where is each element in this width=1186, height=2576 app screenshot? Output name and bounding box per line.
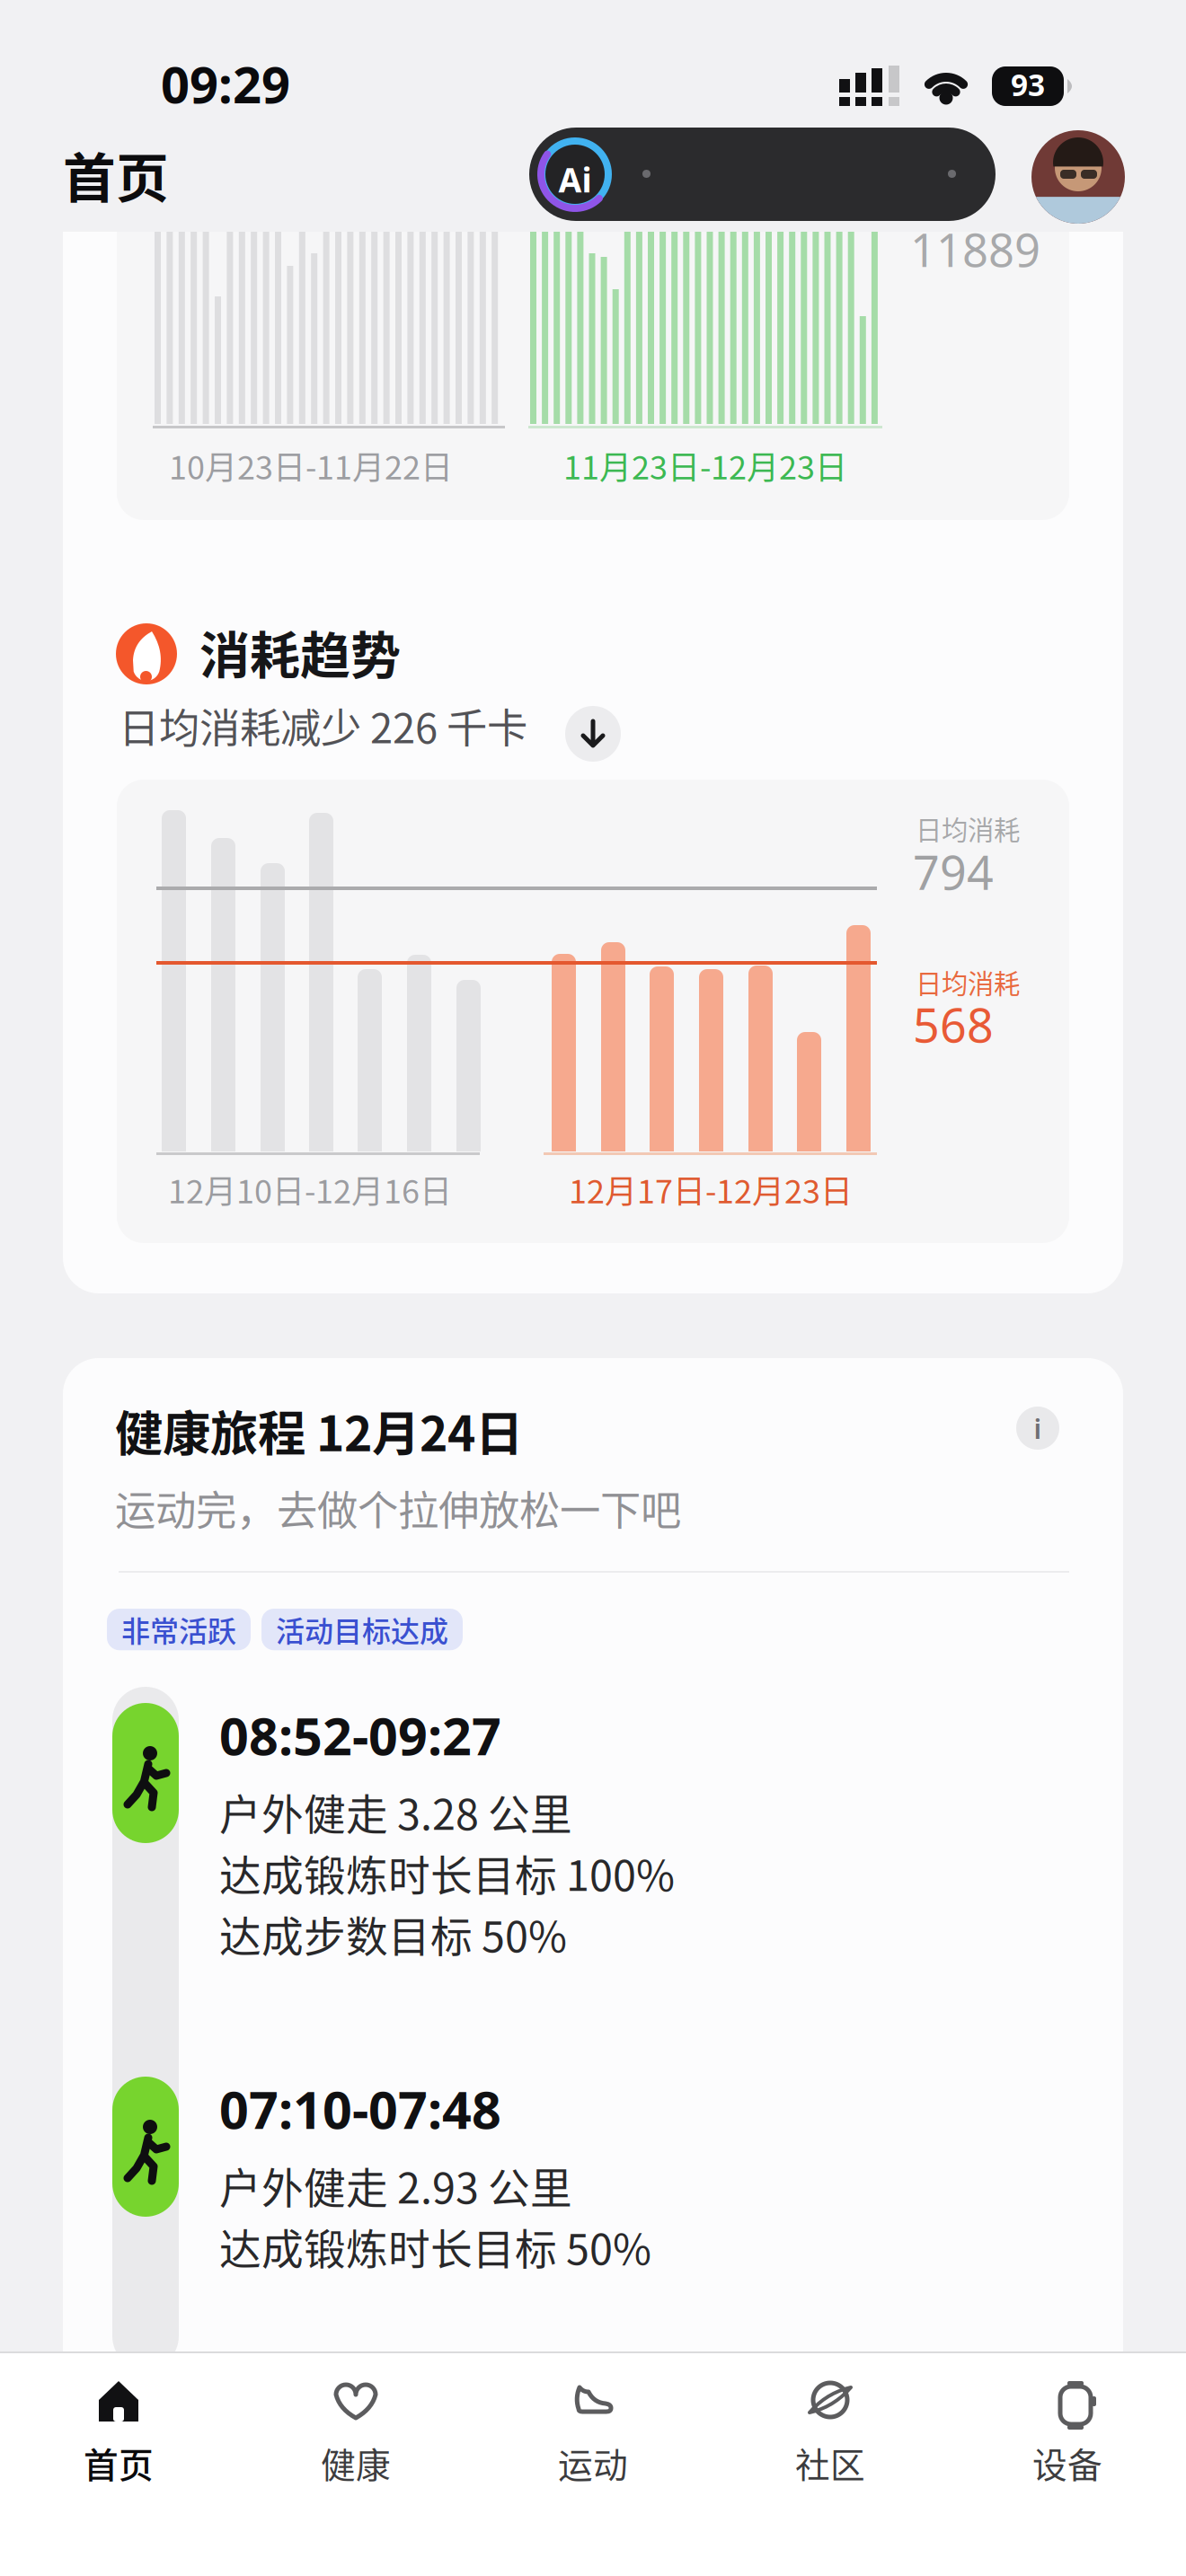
staticText: 93 [1011,65,1045,104]
staticText: i [1034,1410,1042,1446]
staticText: 12月17日-12月23日 [569,1166,853,1213]
staticText: 运动完，去做个拉伸放松一下吧 [115,1478,681,1537]
staticText: 达成锻炼时长目标 100% [219,1842,675,1903]
staticText: 日均消耗减少 226 千卡 [119,696,527,755]
staticText: 首页 [84,2438,154,2488]
button[interactable]: 下降 [565,706,621,762]
button[interactable]: 社区 [712,2377,949,2488]
staticText: 日均消耗 [916,809,1020,847]
staticText: 08:52-09:27 [219,1701,501,1770]
staticText: 11月23日-12月23日 [563,442,847,489]
staticText: 10月23日-11月22日 [169,442,453,489]
staticText: 健康旅程 12月24日 [115,1396,523,1465]
staticText: 社区 [795,2438,865,2488]
staticText: 活动目标达成 [276,1609,448,1650]
staticText: 568 [913,993,994,1055]
button[interactable]: 首页 [0,2377,237,2488]
staticText: 达成步数目标 50% [219,1903,567,1964]
staticText: 户外健走 3.28 公里 [219,1781,572,1842]
staticText: 11889 [910,219,1040,280]
staticText: 达成锻炼时长目标 50% [219,2216,651,2277]
staticText: 设备 [1032,2438,1102,2488]
button[interactable]: 活动目标达成 [261,1609,463,1650]
staticText: 首页 [63,137,169,213]
staticText: Ai [558,157,592,202]
staticText: 运动 [558,2438,628,2488]
staticText: 794 [913,841,994,903]
staticText: 09:29 [161,50,290,117]
staticText: 消耗趋势 [199,615,401,688]
staticText: 户外健走 2.93 公里 [219,2155,572,2215]
button[interactable]: 信息 [1016,1407,1059,1450]
staticText: 日均消耗 [916,963,1020,1001]
staticText: 健康 [321,2438,391,2488]
staticText: 07:10-07:48 [219,2075,501,2143]
staticText: 12月10日-12月16日 [168,1166,452,1213]
staticText: 非常活跃 [121,1609,236,1650]
button[interactable]: 健康 [237,2377,474,2488]
button[interactable]: AI 助手 [529,128,996,221]
button[interactable]: 运动 [474,2377,712,2488]
button[interactable]: 非常活跃 [107,1609,251,1650]
button[interactable]: 设备 [949,2377,1186,2488]
